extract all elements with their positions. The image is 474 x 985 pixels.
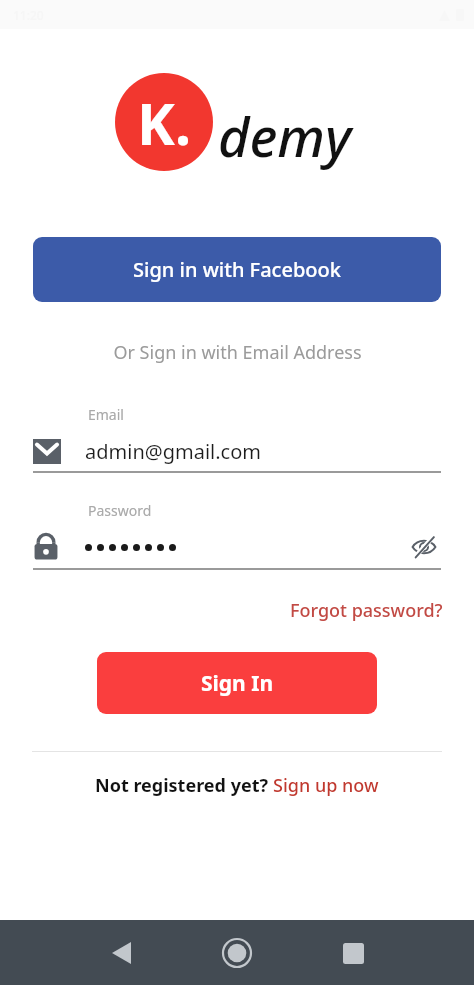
- button[interactable]: Home: [215, 931, 259, 975]
- staticText: demy: [218, 99, 352, 173]
- other: Email: [33, 439, 61, 464]
- button[interactable]: Sign in with Facebook: [33, 237, 441, 302]
- staticText: Sign In: [201, 669, 274, 698]
- button[interactable]: Recent apps: [332, 932, 374, 974]
- staticText: Sign in with Facebook: [133, 256, 341, 283]
- staticText: admin@gmail.com: [85, 438, 262, 465]
- button[interactable]: Back: [100, 932, 142, 974]
- button[interactable]: Forgot password?: [290, 598, 443, 623]
- staticText: K: [137, 84, 175, 162]
- button[interactable]: Sign In: [97, 652, 377, 714]
- staticText: Email: [88, 405, 124, 424]
- button[interactable]: Sign up now: [273, 773, 379, 798]
- button[interactable]: Email: [33, 438, 441, 465]
- staticText: .: [175, 84, 192, 162]
- button[interactable]: Show password: [407, 530, 441, 564]
- staticText: Password: [88, 501, 152, 520]
- staticText: Not registered yet?: [95, 773, 273, 798]
- staticText: Or Sign in with Email Address: [113, 340, 362, 365]
- other: Password: [33, 532, 59, 562]
